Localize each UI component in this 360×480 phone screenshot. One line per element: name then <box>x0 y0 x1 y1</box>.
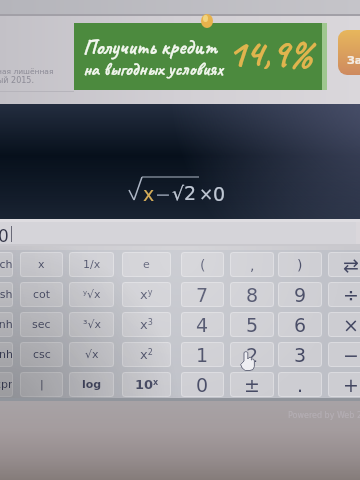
button[interactable]: ³√x <box>69 312 114 337</box>
button[interactable]: + <box>328 372 360 397</box>
button[interactable]: 2 <box>230 342 274 367</box>
button[interactable]: 6 <box>278 312 322 337</box>
staticText: × <box>343 314 359 336</box>
staticText: 14,9% <box>227 28 313 78</box>
button[interactable]: 1 <box>181 342 224 367</box>
staticText: 10x <box>135 377 159 392</box>
staticText: ± <box>244 374 260 396</box>
staticText: ( <box>200 257 206 273</box>
staticText: 1 <box>196 344 209 366</box>
button[interactable]: 0 <box>181 372 224 397</box>
button[interactable]: 5 <box>230 312 274 337</box>
staticText: 1/x <box>83 258 101 271</box>
staticText: ³√x <box>83 318 101 331</box>
staticText: ) <box>297 257 303 273</box>
staticText: 7 <box>196 284 209 306</box>
staticText: 5 <box>246 314 259 336</box>
button[interactable]: xy <box>122 282 171 307</box>
staticText: cot <box>33 288 51 301</box>
button[interactable]: 0 <box>0 222 356 244</box>
staticText: ʸ√x <box>83 288 101 301</box>
staticText: − <box>155 183 171 205</box>
staticText: e <box>143 258 150 271</box>
staticText: ÷ <box>343 284 359 306</box>
staticText: 9 <box>294 284 307 306</box>
button[interactable]: csc <box>20 342 63 367</box>
button[interactable]: log <box>69 372 114 397</box>
staticText: x3 <box>140 317 153 332</box>
button[interactable]: . <box>278 372 322 397</box>
button[interactable]: sech <box>0 252 13 277</box>
staticText: . <box>297 374 304 396</box>
staticText: + <box>343 374 359 396</box>
staticText: cosh <box>0 288 13 301</box>
staticText: 2 <box>246 344 259 366</box>
staticText: √2 <box>172 182 197 204</box>
staticText: × <box>199 184 214 204</box>
staticText: − <box>343 344 359 366</box>
button[interactable]: x2 <box>122 342 171 367</box>
staticText: x2 <box>140 347 153 362</box>
staticText: √x <box>85 348 99 361</box>
staticText: x <box>143 183 155 205</box>
staticText: Зак <box>347 54 360 67</box>
button[interactable]: √x <box>69 342 114 367</box>
staticText: ная лишённая <box>0 67 54 76</box>
button[interactable]: | <box>20 372 63 397</box>
button[interactable]: Получить кредит <box>74 23 326 90</box>
staticText: 8 <box>246 284 259 306</box>
button[interactable]: tanh <box>0 342 13 367</box>
button[interactable]: Зак <box>338 30 360 75</box>
staticText: 3 <box>294 344 307 366</box>
button[interactable]: , <box>230 252 274 277</box>
staticText: log <box>82 378 102 391</box>
button[interactable]: 7 <box>181 282 224 307</box>
staticText: x <box>38 258 45 271</box>
staticText: , <box>250 257 255 273</box>
button[interactable]: ÷ <box>328 282 360 307</box>
staticText: на выгодных условиях <box>83 57 224 80</box>
button[interactable]: ± <box>230 372 274 397</box>
button[interactable]: 1/x <box>69 252 114 277</box>
button[interactable]: x3 <box>122 312 171 337</box>
other: pointer <box>240 350 258 372</box>
staticText: csc <box>33 348 51 361</box>
button[interactable]: sinh <box>0 312 13 337</box>
staticText: Powered by Web 2 <box>288 411 360 420</box>
button[interactable]: 10x <box>122 372 171 397</box>
button[interactable]: 8 <box>230 282 274 307</box>
button[interactable]: expr <box>0 372 13 397</box>
staticText: xy <box>140 287 153 302</box>
staticText: ⇄ <box>343 254 359 276</box>
staticText: 6 <box>294 314 307 336</box>
button[interactable]: cosh <box>0 282 13 307</box>
button[interactable]: ⇄ <box>328 252 360 277</box>
button[interactable]: ) <box>278 252 322 277</box>
button[interactable]: e <box>122 252 171 277</box>
button[interactable]: x <box>20 252 63 277</box>
staticText: 0 <box>196 374 209 396</box>
button[interactable]: ( <box>181 252 224 277</box>
button[interactable]: 4 <box>181 312 224 337</box>
button[interactable]: sec <box>20 312 63 337</box>
staticText: ый 2015. <box>0 76 34 85</box>
staticText: 0 <box>213 183 226 205</box>
button[interactable]: × <box>328 312 360 337</box>
staticText: 4 <box>196 314 209 336</box>
staticText: tanh <box>0 348 13 361</box>
staticText: sech <box>0 258 13 271</box>
button[interactable]: ʸ√x <box>69 282 114 307</box>
staticText: expr <box>0 378 13 391</box>
button[interactable]: 3 <box>278 342 322 367</box>
staticText: | <box>40 378 44 391</box>
staticText: sinh <box>0 318 13 331</box>
staticText: 0 <box>0 226 9 246</box>
button[interactable]: 9 <box>278 282 322 307</box>
staticText: Получить кредит <box>83 34 218 60</box>
button[interactable]: cot <box>20 282 63 307</box>
staticText: sec <box>32 318 51 331</box>
button[interactable]: − <box>328 342 360 367</box>
